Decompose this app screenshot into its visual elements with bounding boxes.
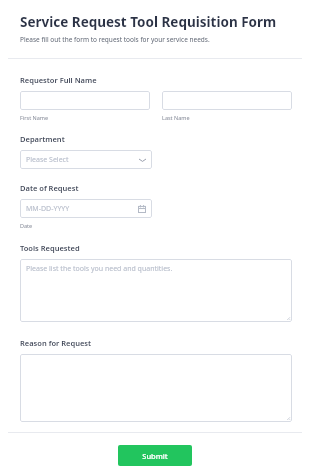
staticText: Submit bbox=[142, 451, 168, 461]
staticText: MM-DD-YYYY bbox=[26, 204, 70, 214]
button[interactable]: Submit bbox=[118, 445, 192, 466]
staticText: Please Select bbox=[26, 155, 69, 165]
button[interactable]: Tools Requested bbox=[20, 259, 292, 322]
staticText: First Name bbox=[20, 114, 49, 121]
staticText: Last Name bbox=[162, 114, 190, 121]
staticText: Please fill out the form to request tool… bbox=[20, 35, 210, 44]
staticText: Requestor Full Name bbox=[20, 75, 97, 85]
staticText: Please list the tools you need and quant… bbox=[26, 264, 173, 274]
button[interactable]: Reason for Request bbox=[20, 354, 292, 422]
staticText: Date of Request bbox=[20, 183, 79, 193]
button[interactable]: Date of Request bbox=[20, 199, 152, 218]
staticText: Service Request Tool Requisition Form bbox=[20, 13, 277, 31]
button[interactable]: Department, Please Select bbox=[20, 150, 152, 169]
button[interactable]: First Name bbox=[20, 91, 150, 110]
staticText: Date bbox=[20, 222, 33, 229]
staticText: Reason for Request bbox=[20, 338, 92, 348]
button[interactable]: Last Name bbox=[162, 91, 292, 110]
staticText: Tools Requested bbox=[20, 243, 80, 253]
staticText: Department bbox=[20, 134, 65, 144]
